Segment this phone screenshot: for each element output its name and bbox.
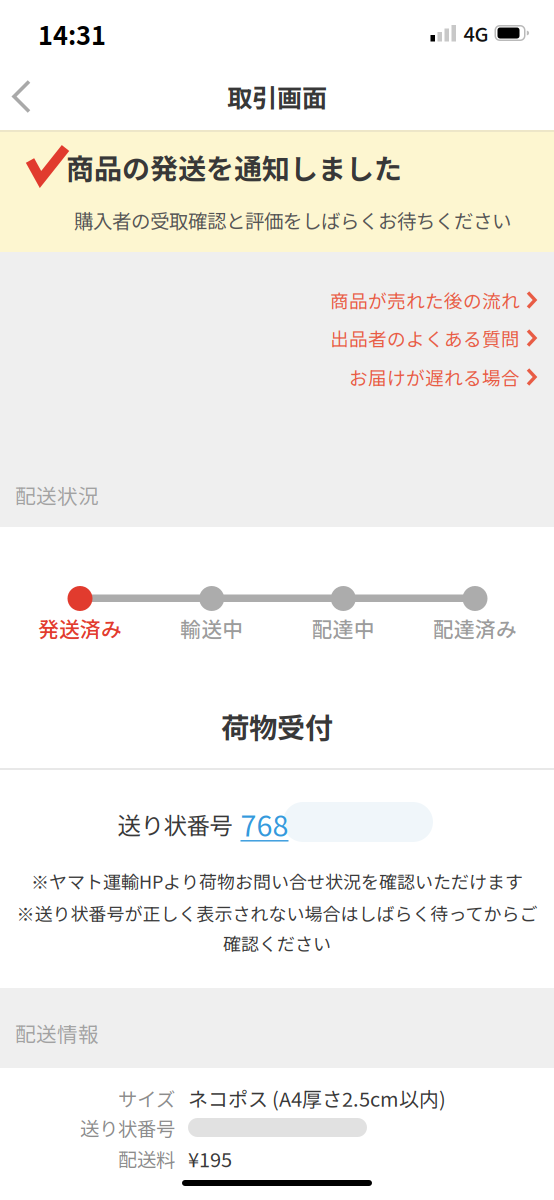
button[interactable]: 戻る <box>3 71 39 121</box>
staticText: 768 <box>240 803 288 845</box>
staticText: 配送情報 <box>15 1018 99 1048</box>
staticText: ネコポス (A4厚さ2.5cm以内) <box>188 1083 446 1112</box>
button[interactable]: 商品が売れた後の流れ <box>330 286 538 313</box>
staticText: 出品者のよくある質問 <box>330 324 520 351</box>
button[interactable]: お届けが遅れる場合 <box>349 363 538 390</box>
staticText: 商品が売れた後の流れ <box>330 286 520 313</box>
staticText: お届けが遅れる場合 <box>349 363 520 390</box>
staticText: ¥195 <box>188 1144 232 1173</box>
staticText: 荷物受付 <box>221 706 333 746</box>
staticText: ※送り状番号が正しく表示されない場合はしばらく待ってからご <box>16 900 537 926</box>
staticText: 発送済み <box>38 613 122 643</box>
staticText: サイズ <box>118 1084 175 1112</box>
staticText: 送り状番号 <box>80 1113 175 1141</box>
button[interactable]: 出品者のよくある質問 <box>330 324 538 351</box>
staticText: 配達済み <box>433 613 517 643</box>
staticText: ※ヤマト運輸HPより荷物お問い合せ状況を確認いただけます <box>31 868 523 894</box>
button[interactable]: 768 <box>240 803 288 845</box>
staticText: 4G <box>463 18 488 47</box>
staticText: 取引画面 <box>227 78 327 115</box>
staticText: 購入者の受取確認と評価をしばらくお待ちください <box>74 206 511 234</box>
staticText: 14:31 <box>38 16 106 52</box>
staticText: 商品の発送を通知しました <box>66 147 402 187</box>
staticText: 輸送中 <box>180 613 243 643</box>
staticText: 配送状況 <box>15 480 99 510</box>
staticText: 配達中 <box>312 613 375 643</box>
staticText: 配送料 <box>118 1144 175 1172</box>
staticText: 確認ください <box>223 930 331 956</box>
staticText: 送り状番号 <box>117 807 232 841</box>
